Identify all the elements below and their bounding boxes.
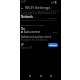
staticText: ←	[21, 6, 24, 10]
staticText: Auto-connect	[24, 30, 41, 34]
staticText: Saved IP	[21, 46, 33, 50]
button[interactable]: See all	[49, 16, 57, 19]
staticText: Network	[21, 15, 33, 19]
button[interactable]: Edit	[53, 31, 58, 34]
staticText: Advanced options here	[21, 35, 52, 39]
staticText: On	[21, 27, 25, 31]
staticText: Preferences • Saved	[21, 23, 45, 26]
staticText: ▲ ▮ ▊	[51, 0, 57, 3]
staticText: Forget this network	[21, 38, 48, 42]
staticText: Connected to MyNetwork 5G • secured	[21, 11, 62, 17]
staticText: Connect	[49, 44, 57, 47]
staticText: Manage data usage and limits	[21, 18, 57, 21]
staticText: Edit	[53, 31, 58, 34]
staticText: 9:41	[21, 0, 27, 4]
button[interactable]: Connect	[48, 43, 58, 47]
staticText: See all	[49, 16, 57, 19]
staticText: IP	[21, 43, 24, 47]
button[interactable]: Auto-connect	[21, 30, 61, 34]
staticText: Wi‑Fi Settings	[25, 5, 51, 10]
